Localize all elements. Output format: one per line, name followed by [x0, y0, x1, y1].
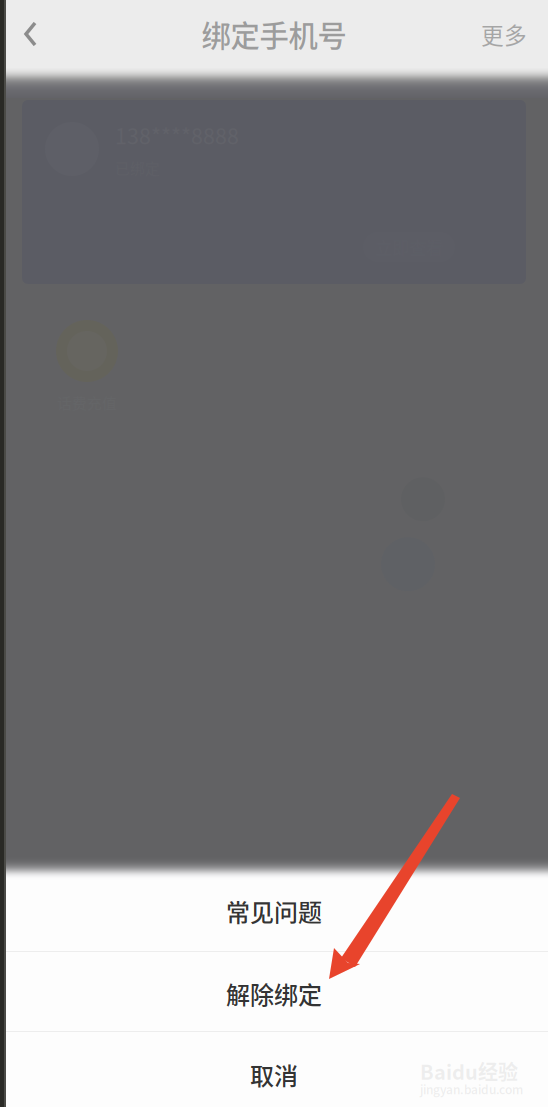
button[interactable]: 取消: [0, 1032, 548, 1107]
button[interactable]: Back: [0, 0, 62, 68]
button[interactable]: 更多: [460, 0, 548, 68]
staticText: 取消: [250, 1057, 298, 1092]
staticText: 解除绑定: [226, 976, 322, 1011]
button[interactable]: 解除绑定: [0, 952, 548, 1031]
staticText: 绑定手机号: [201, 13, 346, 55]
button[interactable]: 常见问题: [0, 871, 548, 951]
staticText: 更多: [481, 18, 527, 50]
staticText: jingyan.baidu.com: [420, 1080, 523, 1098]
staticText: Baidu经验: [420, 1056, 518, 1085]
staticText: 常见问题: [226, 894, 322, 928]
